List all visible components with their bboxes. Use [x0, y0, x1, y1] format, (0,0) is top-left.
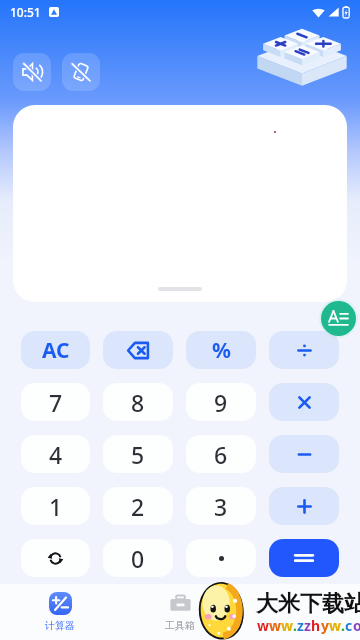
- button[interactable]: 6: [186, 435, 256, 473]
- button[interactable]: 8: [103, 383, 173, 421]
- staticText: w: [257, 616, 269, 635]
- button[interactable]: [269, 487, 339, 525]
- staticText: w: [329, 616, 341, 635]
- button[interactable]: 5: [103, 435, 173, 473]
- button[interactable]: [269, 331, 339, 369]
- button[interactable]: [269, 435, 339, 473]
- button[interactable]: Translate: [321, 301, 356, 336]
- staticText: 工具箱: [165, 619, 195, 632]
- staticText: %: [212, 336, 231, 365]
- button[interactable]: 7: [21, 383, 90, 421]
- button[interactable]: Refresh: [21, 539, 90, 577]
- staticText: 3: [214, 491, 228, 522]
- button[interactable]: Mute: [13, 53, 51, 91]
- button[interactable]: 4: [21, 435, 90, 473]
- staticText: .: [341, 616, 345, 635]
- other: Calculator: [258, 27, 346, 83]
- staticText: w: [269, 616, 281, 635]
- staticText: h: [311, 616, 321, 635]
- button[interactable]: AC: [21, 331, 90, 369]
- button[interactable]: 计算器: [0, 592, 120, 632]
- staticText: o: [353, 616, 360, 635]
- staticText: 9: [214, 387, 228, 418]
- staticText: 7: [49, 387, 63, 418]
- button[interactable]: 9: [186, 383, 256, 421]
- button[interactable]: 0: [103, 539, 173, 577]
- staticText: 计算器: [45, 619, 75, 632]
- button[interactable]: 工具箱: [120, 592, 240, 632]
- staticText: z: [297, 616, 304, 635]
- button[interactable]: Vibrate off: [62, 53, 100, 91]
- staticText: 6: [214, 439, 228, 470]
- button[interactable]: 2: [103, 487, 173, 525]
- staticText: 2: [131, 491, 145, 522]
- staticText: 10:51: [10, 4, 41, 20]
- staticText: .: [293, 616, 297, 635]
- staticText: AC: [42, 336, 70, 365]
- button[interactable]: %: [186, 331, 256, 369]
- staticText: c: [345, 616, 353, 635]
- button[interactable]: [186, 539, 256, 577]
- staticText: 大米下载站: [256, 590, 360, 618]
- button[interactable]: Delete: [103, 331, 173, 369]
- button[interactable]: [269, 539, 339, 577]
- staticText: 8: [131, 387, 145, 418]
- staticText: 4: [49, 439, 63, 470]
- staticText: w: [281, 616, 293, 635]
- staticText: z: [304, 616, 311, 635]
- staticText: 0: [131, 543, 145, 574]
- staticText: y: [321, 616, 329, 635]
- staticText: 5: [131, 439, 145, 470]
- staticText: 1: [49, 491, 63, 522]
- button[interactable]: [269, 383, 339, 421]
- button[interactable]: 1: [21, 487, 90, 525]
- button[interactable]: 3: [186, 487, 256, 525]
